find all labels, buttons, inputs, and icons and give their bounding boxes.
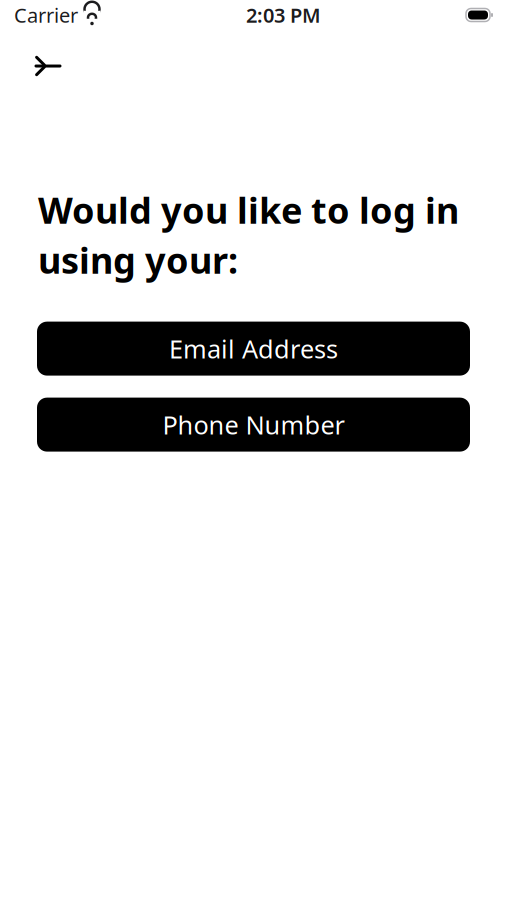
staticText: Carrier [14, 2, 78, 28]
staticText: using your: [38, 236, 238, 284]
staticText: Would you like to log in [38, 186, 459, 234]
staticText: Phone Number [162, 408, 344, 441]
staticText: 2:03 PM [246, 2, 321, 28]
button[interactable]: Back [25, 44, 71, 88]
staticText: Email Address [169, 332, 338, 365]
button[interactable]: Email Address [37, 322, 470, 376]
button[interactable]: Phone Number [37, 398, 470, 452]
